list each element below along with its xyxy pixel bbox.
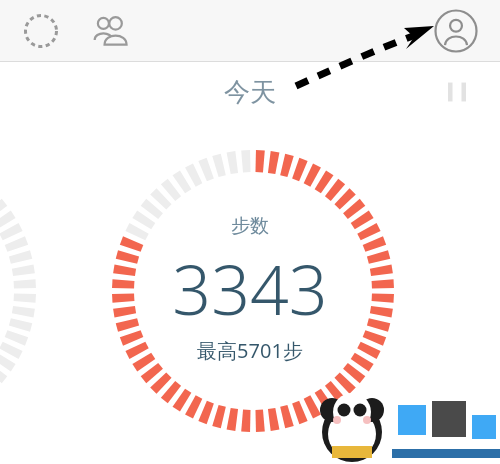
staticText: 步数 [231,214,269,238]
staticText: 3343 [172,242,328,335]
button[interactable]: Profile [430,5,482,57]
button[interactable]: Pause [440,75,474,109]
button[interactable]: 今天 [216,68,284,117]
staticText: 最高5701步 [197,337,303,364]
button[interactable]: Activity [16,6,66,56]
button[interactable]: Friends [85,5,137,57]
staticText: 今天 [224,76,276,109]
